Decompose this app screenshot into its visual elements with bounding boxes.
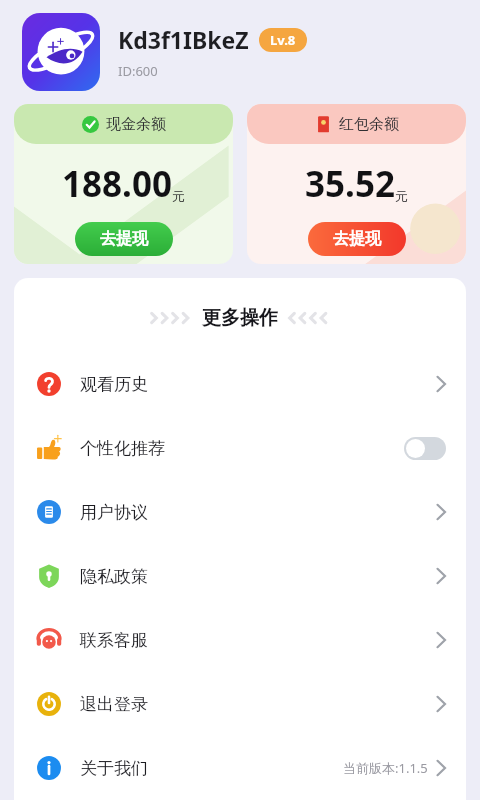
button[interactable]: Avatar: [22, 13, 100, 91]
staticText: Kd3f1IBkeZ: [118, 24, 249, 55]
staticText: 隐私政策: [80, 566, 148, 587]
button[interactable]: 隐私政策: [14, 544, 466, 608]
staticText: 个性化推荐: [80, 438, 165, 459]
button[interactable]: 关于我们: [14, 736, 466, 800]
button[interactable]: 观看历史: [14, 352, 466, 416]
button[interactable]: 退出登录: [14, 672, 466, 736]
button[interactable]: 联系客服: [14, 608, 466, 672]
staticText: 用户协议: [80, 502, 148, 523]
button[interactable]: 现金余额: [14, 104, 233, 264]
staticText: 观看历史: [80, 374, 148, 395]
staticText: 元: [172, 188, 185, 204]
staticText: Lv.8: [270, 31, 296, 49]
button[interactable]: 个性化推荐: [14, 416, 466, 480]
staticText: ID:600: [118, 62, 158, 80]
button[interactable]: 红包余额: [247, 104, 466, 264]
button[interactable]: Toggle personalized recommendations: [404, 437, 446, 460]
staticText: 35.52: [305, 160, 395, 208]
button[interactable]: 用户协议: [14, 480, 466, 544]
staticText: 188.00: [62, 160, 172, 208]
staticText: 关于我们: [80, 758, 148, 779]
staticText: 现金余额: [106, 115, 166, 134]
button[interactable]: Lv.8: [259, 28, 307, 52]
staticText: 更多操作: [202, 306, 278, 330]
button[interactable]: 去提现: [75, 222, 173, 256]
staticText: 元: [395, 188, 408, 204]
staticText: 去提现: [333, 229, 381, 249]
staticText: 联系客服: [80, 630, 148, 651]
staticText: 当前版本:1.1.5: [343, 759, 428, 777]
staticText: 红包余额: [339, 115, 399, 134]
button[interactable]: 去提现: [308, 222, 406, 256]
staticText: 退出登录: [80, 694, 148, 715]
staticText: 去提现: [100, 229, 148, 249]
